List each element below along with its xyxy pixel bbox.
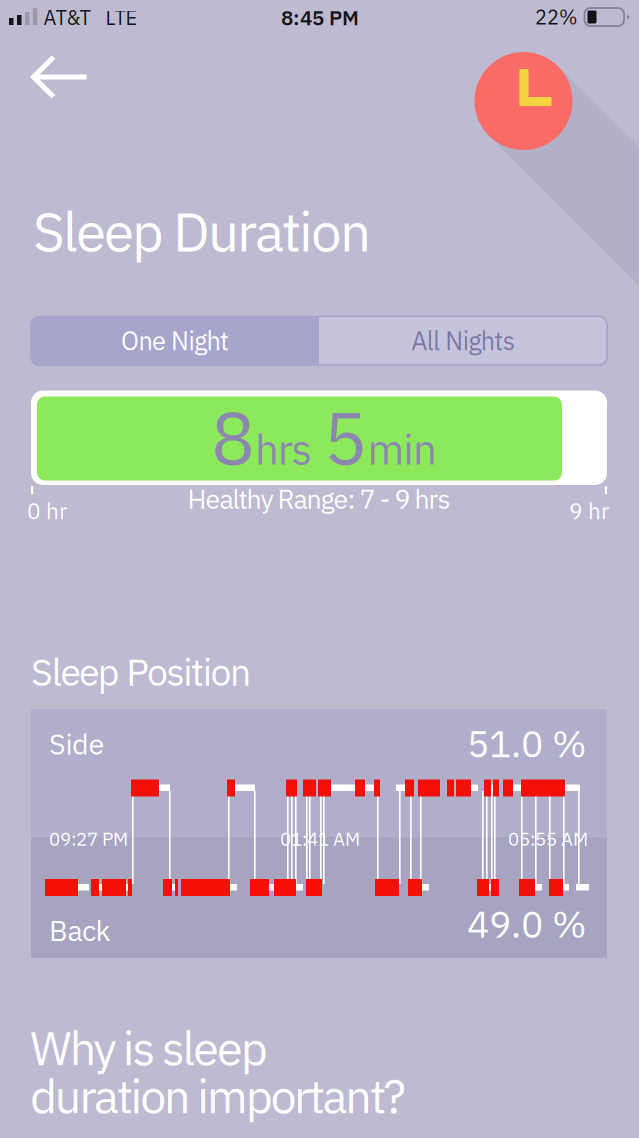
staticText: 8 bbox=[211, 389, 255, 485]
staticText: Sleep Duration bbox=[33, 195, 371, 267]
button[interactable] bbox=[31, 56, 87, 98]
staticText: 5 bbox=[323, 389, 367, 485]
staticText: Sleep Position bbox=[31, 647, 251, 696]
staticText: 49.0 % bbox=[467, 899, 587, 948]
staticText: min bbox=[367, 421, 437, 476]
staticText: duration important? bbox=[30, 1065, 406, 1126]
button[interactable] bbox=[474, 52, 572, 150]
staticText: Side bbox=[49, 725, 104, 762]
button[interactable]: All Nights bbox=[319, 316, 607, 365]
staticText: 05:55 AM bbox=[508, 826, 588, 851]
staticText: Healthy Range: 7 - 9 hrs bbox=[187, 481, 450, 516]
staticText: 22% bbox=[535, 4, 578, 30]
staticText: Back bbox=[49, 911, 110, 949]
staticText: 09:27 PM bbox=[49, 826, 128, 851]
staticText: 9 hr bbox=[569, 496, 609, 525]
staticText: 51.0 % bbox=[467, 719, 587, 767]
staticText: 0 hr bbox=[27, 496, 67, 525]
button[interactable]: One Night bbox=[31, 316, 319, 365]
staticText: AT&T bbox=[43, 4, 90, 30]
staticText: LTE bbox=[105, 4, 137, 30]
staticText: 01:41 AM bbox=[280, 826, 360, 851]
staticText: All Nights bbox=[411, 324, 515, 357]
staticText: One Night bbox=[121, 324, 229, 357]
staticText: 8:45 PM bbox=[281, 4, 359, 31]
staticText: hrs bbox=[255, 421, 311, 476]
staticText: Why is sleep bbox=[30, 1017, 268, 1078]
